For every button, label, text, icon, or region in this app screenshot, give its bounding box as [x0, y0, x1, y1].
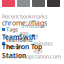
staticText: · 9 minutes ago	[33, 33, 53, 54]
staticText: Tags	[6, 26, 18, 33]
staticText: Recent bookmarks	[2, 13, 48, 20]
button[interactable]: teamblend twitter	[0, 41, 64, 46]
staticText: teamblend twitter	[6, 36, 32, 51]
staticText: chrome://flags	[2, 19, 47, 27]
staticText: www.irontopstation.com	[2, 53, 61, 60]
staticText: · 5 minutes ago	[19, 22, 45, 37]
button[interactable]: Tags	[0, 27, 64, 32]
staticText: TeamSwift	[2, 33, 36, 41]
staticText: The Iron Top Station	[2, 42, 42, 60]
